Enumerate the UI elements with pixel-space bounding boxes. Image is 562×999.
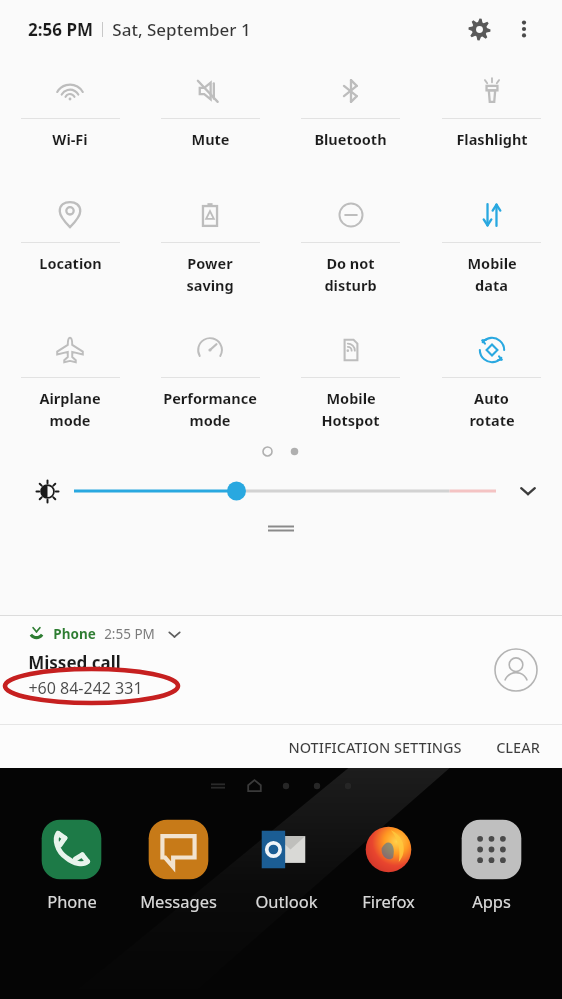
staticText: Phone [47,890,97,912]
staticText: 2:56 PM [28,18,93,41]
button[interactable]: Expand brightness settings [506,469,550,513]
staticText: Missed call [28,651,121,674]
staticText: Do not [326,253,375,273]
staticText: saving [186,275,234,295]
staticText: Wi-Fi [52,129,88,149]
button[interactable]: Mute [140,58,280,149]
button[interactable]: Brightness [30,474,64,508]
staticText: Location [39,253,102,273]
staticText: mode [189,410,231,430]
staticText: Bluetooth [314,129,387,149]
staticText: Phone [53,625,96,643]
button[interactable]: Power [140,182,280,295]
staticText: Mobile [326,388,376,408]
staticText: Firefox [362,890,415,912]
button[interactable]: Apps [456,816,527,912]
staticText: disturb [324,275,377,295]
staticText: CLEAR [496,737,540,757]
staticText: Auto [474,388,509,408]
staticText: Sat, September 1 [112,18,251,41]
staticText: mode [49,410,91,430]
button[interactable]: Mobile [280,317,421,430]
button[interactable]: Airplane [0,317,140,430]
staticText: 2:55 PM [104,625,155,643]
button[interactable]: Wi-Fi [0,58,140,149]
staticText: Outlook [255,890,318,912]
button[interactable]: Do not [280,182,421,295]
staticText: data [475,275,508,295]
staticText: rotate [469,410,515,430]
staticText: NOTIFICATION SETTINGS [288,737,462,757]
button[interactable]: Outlook [251,816,322,912]
button[interactable]: More options [504,9,544,49]
button[interactable]: Phone [36,816,107,912]
button[interactable]: Flashlight [421,58,562,149]
staticText: Flashlight [456,129,528,149]
staticText: Mute [191,129,230,149]
button[interactable] [74,476,496,506]
button[interactable]: Performance [140,317,280,430]
button[interactable]: NOTIFICATION SETTINGS [278,731,472,763]
staticText: Apps [472,890,511,912]
button[interactable]: Location [0,182,140,273]
staticText: +60 84-242 331 [28,677,143,699]
staticText: Hotspot [321,410,380,430]
button[interactable]: Firefox [353,816,424,912]
staticText: Power [187,253,233,273]
staticText: Messages [140,890,217,912]
button[interactable]: Contact photo [494,648,538,692]
button[interactable]: Bluetooth [280,58,421,149]
button[interactable]: Phone [0,616,562,724]
button[interactable]: Expand notification [164,624,184,644]
button[interactable]: CLEAR [486,731,550,763]
button[interactable]: Settings [458,8,500,50]
staticText: Performance [163,388,257,408]
staticText: Airplane [39,388,101,408]
button[interactable]: Mobile [421,182,562,295]
button[interactable]: Auto [421,317,562,430]
button[interactable]: Messages [138,816,219,912]
staticText: Mobile [467,253,517,273]
